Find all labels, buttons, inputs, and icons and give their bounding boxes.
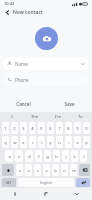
button[interactable]: 2 xyxy=(11,122,18,134)
button[interactable]: Save xyxy=(46,99,92,109)
button[interactable]: 4 xyxy=(29,122,36,134)
staticText: k xyxy=(73,154,76,159)
button[interactable]: j xyxy=(62,150,69,162)
staticText: x xyxy=(27,168,30,173)
staticText: b xyxy=(54,168,57,173)
button[interactable]: y xyxy=(47,136,54,148)
button[interactable]: r xyxy=(29,136,36,148)
button[interactable]: Home xyxy=(30,188,61,200)
button[interactable]: Cancel xyxy=(0,99,46,109)
staticText: To xyxy=(78,114,83,119)
staticText: e xyxy=(22,140,25,145)
button[interactable]: q xyxy=(2,136,9,148)
button[interactable]: e xyxy=(20,136,27,148)
staticText: 5 xyxy=(40,126,43,131)
staticText: h xyxy=(55,154,58,159)
button[interactable]: Enter xyxy=(76,178,90,187)
button[interactable]: x xyxy=(25,164,32,176)
staticText: c xyxy=(37,168,39,173)
button[interactable]: Symbols xyxy=(2,178,16,187)
staticText: r xyxy=(32,140,34,145)
staticText: q xyxy=(4,140,7,145)
button[interactable]: g xyxy=(44,150,51,162)
button[interactable]: 5 xyxy=(38,122,45,134)
button[interactable]: 3 xyxy=(20,122,27,134)
staticText: !#1 xyxy=(6,180,12,185)
staticText: English xyxy=(40,180,52,185)
staticText: 3 xyxy=(22,126,25,131)
button[interactable]: w xyxy=(11,136,18,148)
button[interactable]: Add photo xyxy=(35,27,58,50)
staticText: Phone xyxy=(15,77,29,83)
button[interactable]: t xyxy=(38,136,45,148)
button[interactable]: p xyxy=(83,136,90,148)
staticText: m xyxy=(72,168,76,173)
button[interactable]: k xyxy=(71,150,78,162)
button[interactable]: 8 xyxy=(65,122,72,134)
staticText: i xyxy=(68,140,70,145)
button[interactable]: Delete xyxy=(79,164,90,176)
button[interactable]: To xyxy=(69,112,92,121)
button[interactable]: Back xyxy=(3,8,12,17)
button[interactable]: o xyxy=(74,136,81,148)
button[interactable]: 7 xyxy=(56,122,63,134)
staticText: a xyxy=(8,154,11,159)
button[interactable]: Name xyxy=(3,57,89,70)
button[interactable]: Recents xyxy=(0,188,30,200)
button[interactable]: u xyxy=(56,136,63,148)
staticText: The xyxy=(31,114,38,119)
staticText: g xyxy=(46,154,49,159)
staticText: Save xyxy=(64,101,75,107)
button[interactable]: h xyxy=(53,150,60,162)
button[interactable]: Space xyxy=(18,178,74,187)
staticText: 1 xyxy=(4,126,7,131)
button[interactable]: Back xyxy=(61,188,92,200)
staticText: 4 xyxy=(31,126,34,131)
staticText: 8 xyxy=(67,126,70,131)
staticText: u xyxy=(58,140,61,145)
staticText: w xyxy=(13,140,17,145)
staticText: j xyxy=(65,154,67,159)
staticText: t xyxy=(41,140,43,145)
button[interactable]: i xyxy=(65,136,72,148)
button[interactable]: l xyxy=(80,150,87,162)
button[interactable]: f xyxy=(35,150,42,162)
button[interactable]: a xyxy=(5,150,13,162)
button[interactable]: 6 xyxy=(47,122,54,134)
staticText: 2 xyxy=(13,126,16,131)
staticText: l xyxy=(83,154,85,159)
button[interactable]: 0 xyxy=(83,122,90,134)
staticText: New contact xyxy=(13,9,43,16)
staticText: o xyxy=(76,140,79,145)
staticText: 0 xyxy=(85,126,88,131)
staticText: y xyxy=(49,140,52,145)
button[interactable]: s xyxy=(15,150,23,162)
staticText: d xyxy=(28,154,31,159)
button[interactable]: Shift xyxy=(2,164,14,176)
button[interactable]: z xyxy=(16,164,23,176)
staticText: s xyxy=(18,154,20,159)
button[interactable]: The xyxy=(23,112,46,121)
staticText: Cancel xyxy=(16,101,31,107)
button[interactable]: 1 xyxy=(2,122,9,134)
button[interactable]: b xyxy=(52,164,59,176)
button[interactable]: Phone xyxy=(3,73,89,86)
button[interactable]: m xyxy=(70,164,77,176)
button[interactable]: d xyxy=(25,150,33,162)
button[interactable]: I xyxy=(0,112,23,121)
button[interactable]: c xyxy=(34,164,41,176)
staticText: n xyxy=(63,168,66,173)
button[interactable]: v xyxy=(43,164,50,176)
staticText: v xyxy=(45,168,48,173)
staticText: Name xyxy=(15,61,28,67)
button[interactable]: 9 xyxy=(74,122,81,134)
staticText: 10:42 xyxy=(4,1,15,6)
staticText: 7 xyxy=(58,126,61,131)
staticText: f xyxy=(38,154,40,159)
staticText: 9 xyxy=(76,126,79,131)
staticText: z xyxy=(19,168,21,173)
button[interactable]: I'm xyxy=(46,112,69,121)
staticText: I'm xyxy=(55,114,61,119)
staticText: I xyxy=(11,114,13,119)
button[interactable]: n xyxy=(61,164,68,176)
